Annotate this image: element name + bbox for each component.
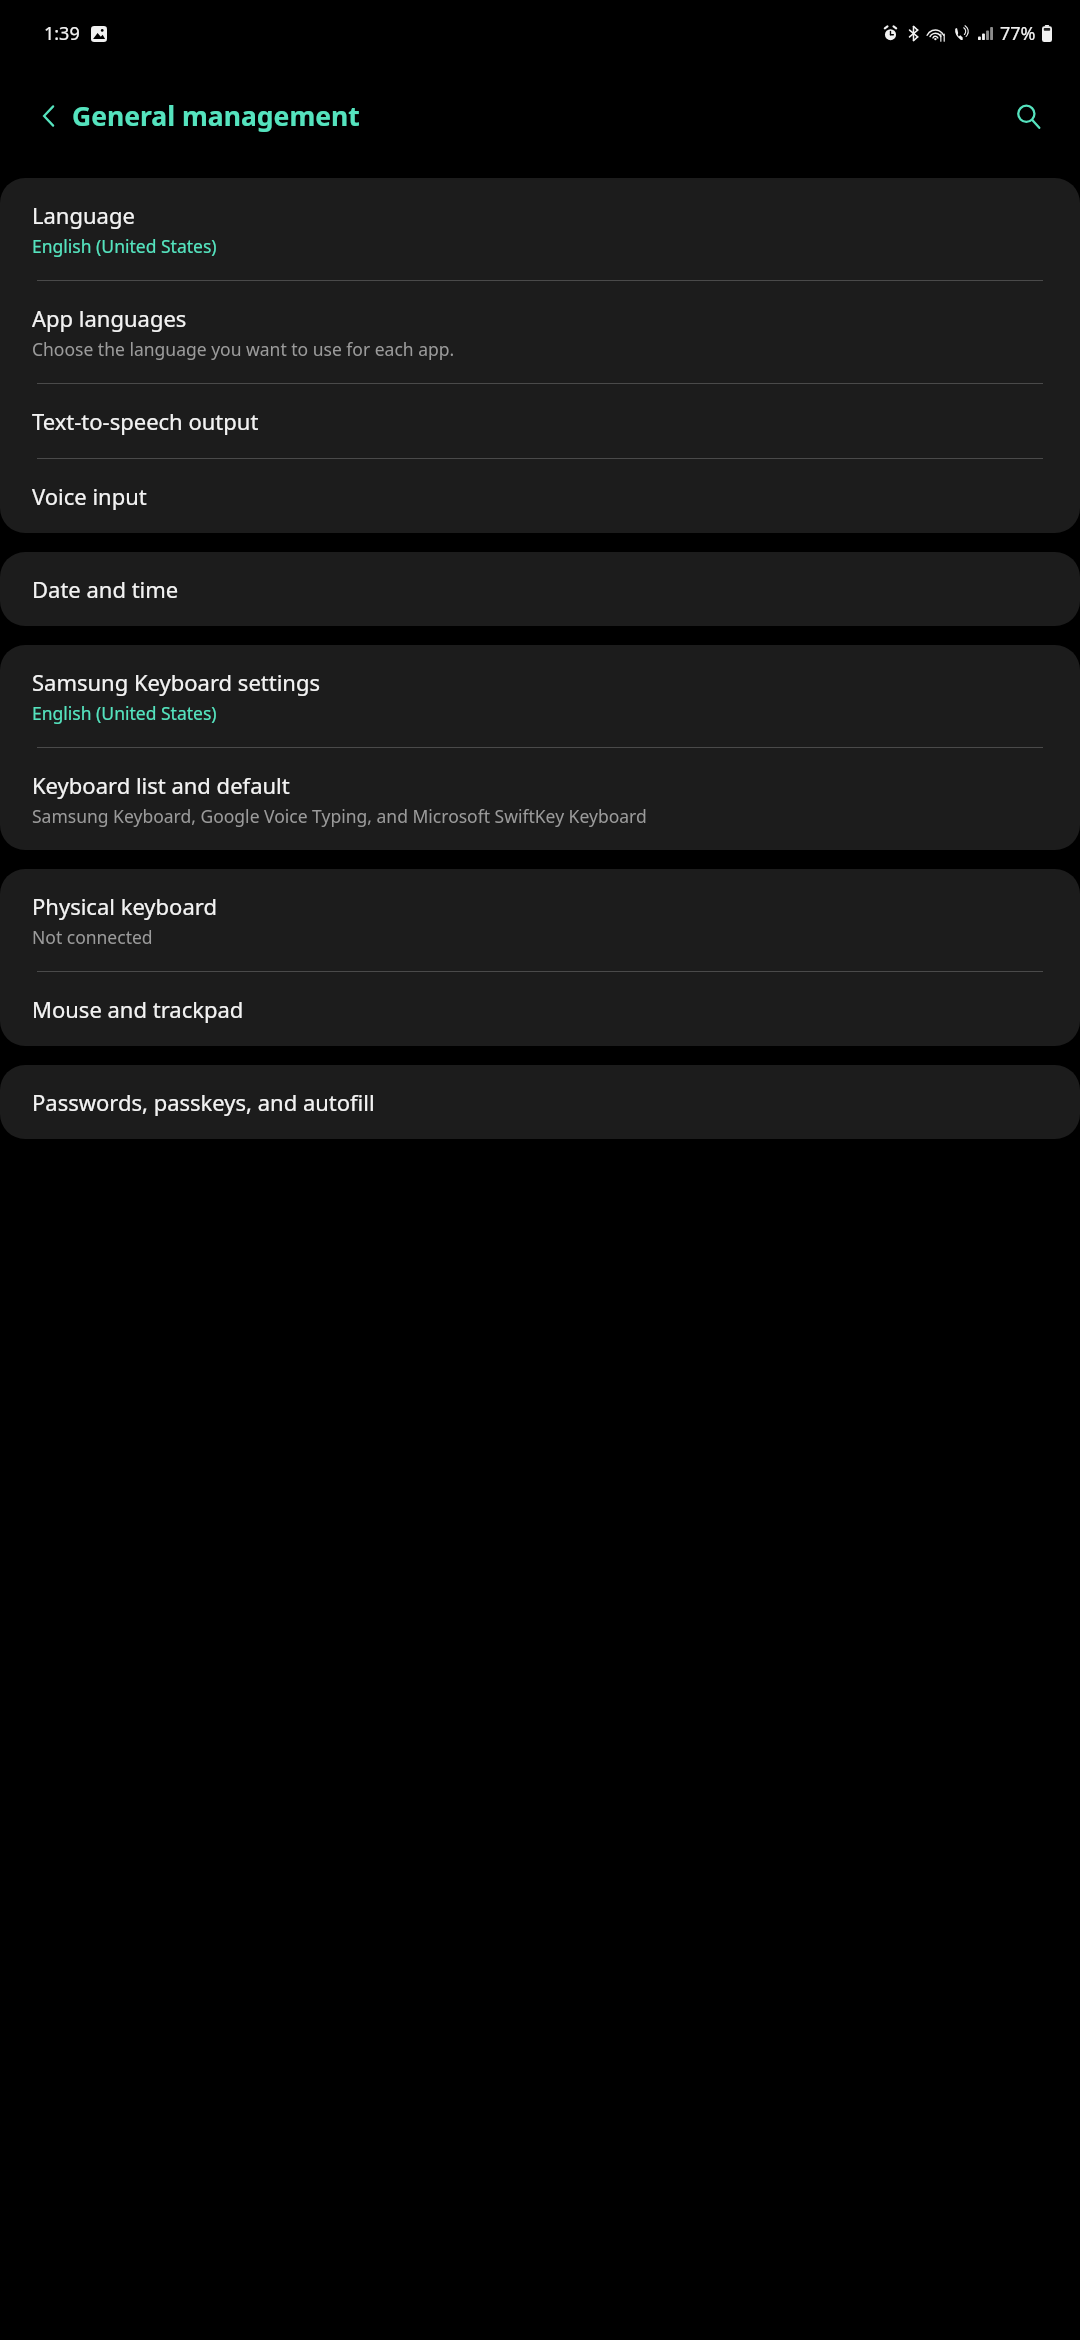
button[interactable]: Date and time [0,552,1080,626]
button[interactable]: Physical keyboard [0,869,1080,971]
staticText: Voice input [32,481,147,511]
staticText: Choose the language you want to use for … [32,337,455,361]
button[interactable]: Search [1000,88,1056,144]
staticText: Not connected [32,925,153,949]
staticText: 77% [1000,21,1036,46]
staticText: Date and time [32,574,179,604]
button[interactable]: Samsung Keyboard settings [0,645,1080,747]
button[interactable]: Voice input [0,459,1080,533]
staticText: English (United States) [32,701,217,725]
staticText: Passwords, passkeys, and autofill [32,1087,375,1117]
staticText: App languages [32,303,187,333]
staticText: English (United States) [32,234,217,258]
staticText: Mouse and trackpad [32,994,244,1024]
staticText: Physical keyboard [32,891,217,921]
button[interactable]: Back [22,89,76,143]
staticText: 1:39 [44,21,80,46]
staticText: Language [32,200,135,230]
button[interactable]: Language [0,178,1080,280]
staticText: Keyboard list and default [32,770,290,800]
staticText: Text-to-speech output [32,406,259,436]
staticText: Samsung Keyboard, Google Voice Typing, a… [32,804,647,828]
button[interactable]: Keyboard list and default [0,748,1080,850]
button[interactable]: Mouse and trackpad [0,972,1080,1046]
button[interactable]: App languages [0,281,1080,383]
button[interactable]: Text-to-speech output [0,384,1080,458]
button[interactable]: Passwords, passkeys, and autofill [0,1065,1080,1139]
staticText: Samsung Keyboard settings [32,667,321,697]
staticText: General management [72,98,360,134]
